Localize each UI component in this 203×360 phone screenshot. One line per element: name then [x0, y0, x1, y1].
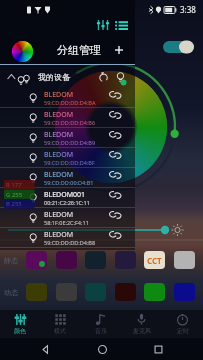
staticText: 我的设备: [38, 72, 70, 82]
staticText: 分组管理: [57, 43, 101, 57]
staticText: 59:CD:DD:DD:D4:B6: [44, 119, 96, 126]
button[interactable]: Connect: [107, 132, 123, 145]
button[interactable]: 麦克风: [121, 310, 162, 338]
staticText: 59:CD:DD:00:D4:B1: [44, 179, 94, 186]
button[interactable]: 颜色: [0, 310, 40, 338]
button[interactable]: Home: [91, 338, 113, 360]
button[interactable]: Back: [34, 338, 56, 360]
staticText: 定时: [177, 327, 189, 335]
button[interactable]: Connect: [107, 172, 123, 185]
button[interactable]: 音乐: [80, 310, 121, 338]
button[interactable]: CCT: [144, 251, 165, 269]
staticText: 00:21:C2:26:1C:11: [44, 199, 90, 206]
button[interactable]: BLEDOM: [0, 208, 135, 228]
staticText: 音乐: [95, 327, 107, 335]
staticText: 3:38: [180, 4, 196, 15]
staticText: BLEDOM001: [44, 190, 86, 200]
staticText: G 255: [6, 191, 23, 199]
staticText: 58:1F:0E:2C:F4:11: [44, 219, 89, 226]
staticText: R 177: [6, 181, 22, 189]
staticText: BLEDOM: [44, 110, 74, 120]
button[interactable]: Brightness: [6, 223, 184, 237]
button[interactable]: BLEDOM: [0, 168, 135, 188]
staticText: 麦克风: [133, 327, 151, 335]
staticText: 59:CD:DD:DD:D4:B9: [44, 139, 96, 146]
button[interactable]: BLEDOM: [0, 128, 135, 148]
button[interactable]: Colour preset: [26, 251, 47, 269]
button[interactable]: BLEDOM001: [0, 188, 135, 208]
button[interactable]: Colour preset: [174, 283, 195, 301]
staticText: 59:CD:DD:DD:D4:BA: [44, 99, 96, 106]
staticText: BLEDOM: [44, 210, 74, 220]
button[interactable]: Colour preset: [115, 251, 136, 269]
button[interactable]: BLEDOM: [0, 88, 135, 108]
staticText: 模式: [54, 327, 66, 335]
button[interactable]: Colour preset: [26, 283, 47, 301]
button[interactable]: Connect: [107, 92, 123, 105]
button[interactable]: Connect: [107, 232, 123, 245]
button[interactable]: 定时: [162, 310, 203, 338]
button[interactable]: 模式: [40, 310, 80, 338]
staticText: BLEDOM: [44, 170, 74, 180]
button[interactable]: Recents: [147, 338, 169, 360]
button[interactable]: Add group: [111, 42, 126, 57]
staticText: BLEDOM: [44, 150, 74, 160]
button[interactable]: BLEDOM: [0, 108, 135, 128]
button[interactable]: Connect: [107, 112, 123, 125]
button[interactable]: Sliders: [94, 18, 112, 32]
button[interactable]: Colour preset: [144, 283, 165, 301]
button[interactable]: Colour preset: [85, 283, 106, 301]
staticText: BLEDOM: [44, 90, 74, 100]
button[interactable]: BLEDOM: [0, 228, 135, 248]
button[interactable]: Colour preset: [56, 283, 77, 301]
button[interactable]: Colour preset: [115, 283, 136, 301]
staticText: 静态: [4, 256, 18, 265]
staticText: 动态: [4, 288, 18, 297]
button[interactable]: Colour preset: [174, 251, 195, 269]
button[interactable]: Connect: [107, 192, 123, 205]
button[interactable]: BLEDOM: [0, 148, 135, 168]
staticText: CCT: [147, 255, 162, 266]
button[interactable]: Connect: [107, 152, 123, 165]
staticText: 颜色: [14, 327, 26, 335]
button[interactable]: List view: [113, 18, 130, 32]
staticText: BLEDOM: [44, 130, 74, 140]
staticText: 59:CD:DD:DD:D4:B8: [44, 239, 96, 246]
button[interactable]: Colour preset: [56, 251, 77, 269]
staticText: 59:CD:DD:DD:D4:BF: [44, 159, 95, 166]
button[interactable]: 我的设备: [0, 65, 135, 88]
staticText: B 255: [6, 200, 22, 208]
staticText: BLEDOM: [44, 230, 74, 240]
button[interactable]: Colour preset: [85, 251, 106, 269]
button[interactable]: Connect: [107, 212, 123, 225]
button[interactable]: Power toggle: [160, 38, 196, 56]
